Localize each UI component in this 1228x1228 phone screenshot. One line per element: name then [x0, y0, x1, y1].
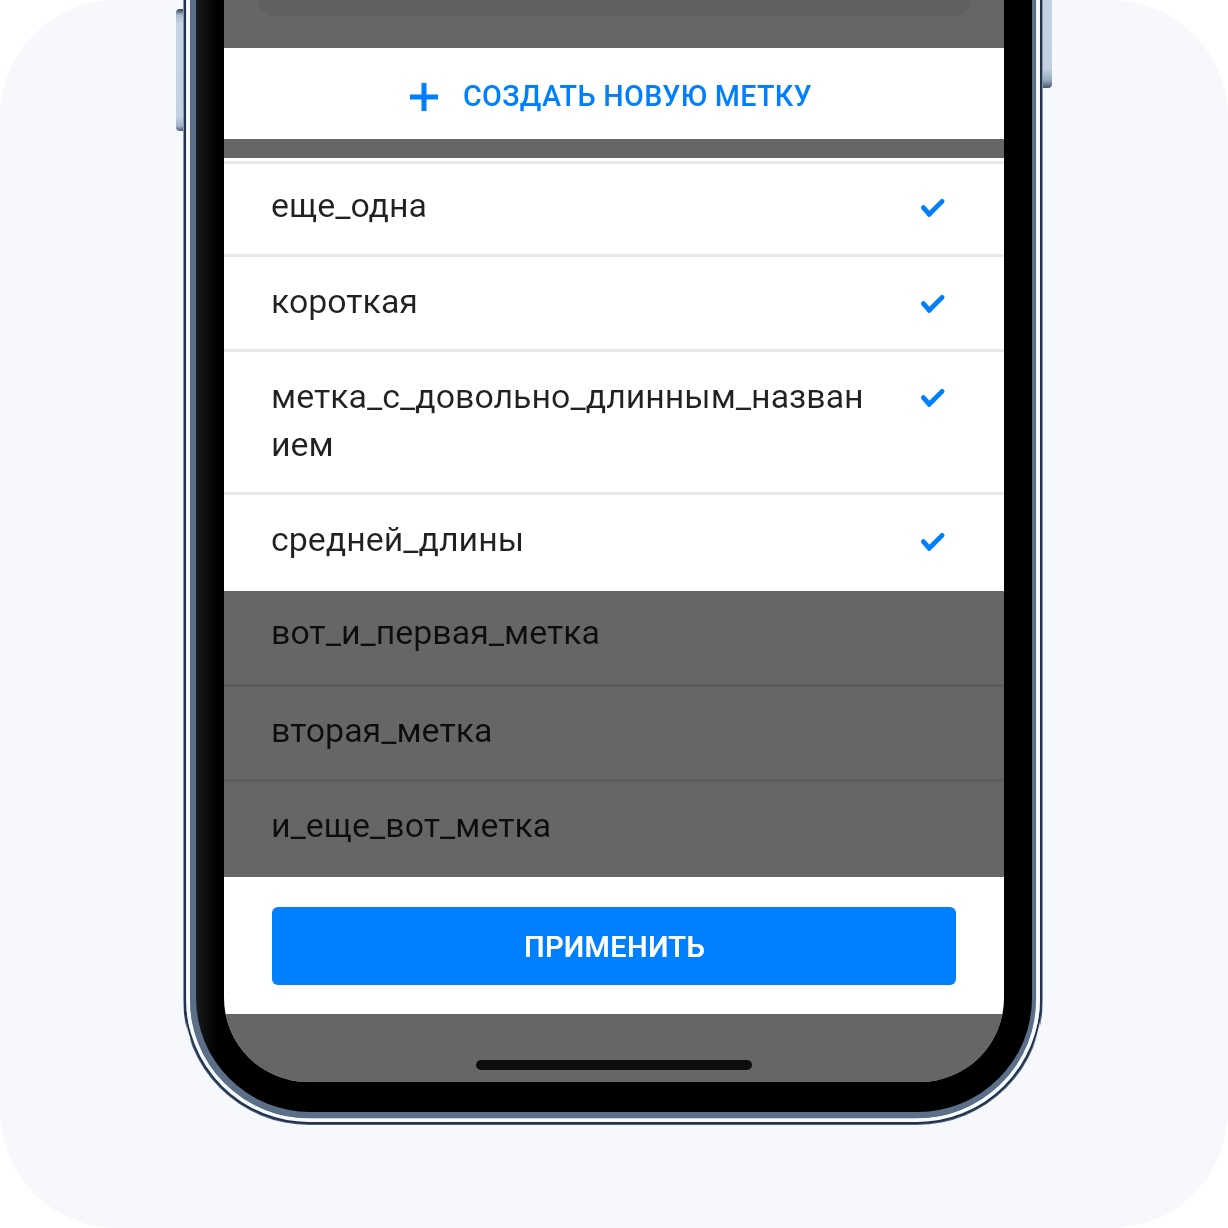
other: Selected — [921, 389, 945, 407]
staticText: и_еще_вот_метка — [271, 806, 875, 846]
button[interactable]: короткая — [224, 256, 1004, 349]
staticText: метка_с_довольно_длинным_названием — [271, 377, 875, 464]
staticText: вот_и_первая_метка — [271, 613, 875, 653]
button[interactable]: средней_длины — [224, 494, 1004, 591]
staticText: СОЗДАТЬ НОВУЮ МЕТКУ — [463, 79, 812, 113]
staticText: короткая — [271, 282, 875, 322]
other: Selected — [921, 533, 945, 551]
button[interactable]: вторая_метка — [224, 686, 1004, 779]
button[interactable]: Add — [224, 48, 1004, 139]
other: Selected — [921, 199, 945, 217]
other: Add — [410, 83, 438, 111]
staticText: еще_одна — [271, 186, 875, 226]
other: Selected — [921, 295, 945, 313]
button[interactable]: еще_одна — [224, 163, 1004, 254]
button[interactable]: ПРИМЕНИТЬ — [272, 907, 956, 985]
button[interactable]: метка_с_довольно_длинным_названием — [224, 351, 1004, 492]
button[interactable]: вот_и_первая_метка — [224, 591, 1004, 684]
staticText: средней_длины — [271, 520, 875, 560]
staticText: ПРИМЕНИТЬ — [524, 930, 705, 964]
button[interactable]: и_еще_вот_метка — [224, 781, 1004, 877]
staticText: вторая_метка — [271, 711, 875, 751]
